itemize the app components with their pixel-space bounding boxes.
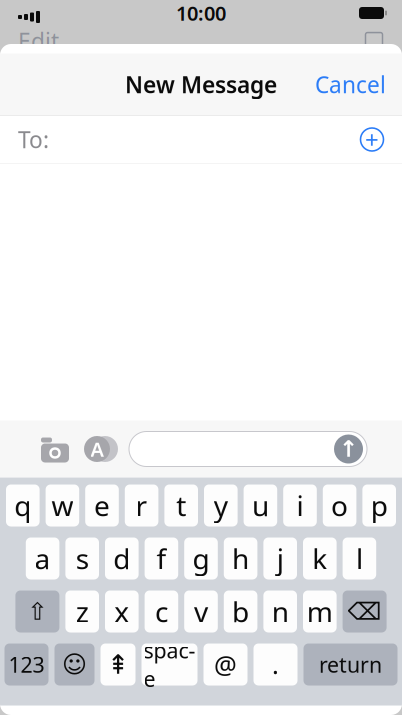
staticText: To: — [18, 124, 49, 154]
button[interactable]: h — [224, 537, 257, 579]
staticText: k — [312, 540, 327, 577]
button[interactable]: Emoji — [54, 643, 94, 685]
staticText: z — [76, 593, 89, 630]
button[interactable]: Delete — [343, 590, 387, 632]
staticText: e — [94, 487, 110, 524]
button[interactable]: Apps — [78, 426, 124, 472]
staticText: 10:00 — [176, 0, 226, 26]
button[interactable]: At sign — [203, 643, 247, 685]
button[interactable]: Return — [303, 643, 397, 685]
staticText: c — [155, 593, 168, 630]
staticText: x — [114, 593, 129, 630]
staticText: o — [331, 487, 348, 524]
staticText: Cancel — [315, 69, 386, 99]
staticText: space — [143, 636, 195, 693]
button[interactable]: Space — [141, 643, 197, 685]
button[interactable]: z — [65, 590, 99, 632]
staticText: f — [156, 540, 166, 577]
staticText: ⌫ — [348, 598, 382, 625]
staticText: q — [14, 487, 31, 524]
button[interactable]: Camera — [32, 426, 78, 472]
button[interactable]: u — [244, 484, 277, 526]
button[interactable]: w — [46, 484, 79, 526]
button[interactable]: g — [184, 537, 218, 579]
button[interactable]: t — [164, 484, 198, 526]
button[interactable]: j — [263, 537, 297, 579]
button[interactable]: Period — [253, 643, 297, 685]
button[interactable]: d — [105, 537, 139, 579]
staticText: . — [272, 648, 279, 681]
button[interactable]: Send — [332, 432, 365, 465]
staticText: b — [232, 593, 249, 630]
staticText: 123 — [8, 650, 44, 679]
button[interactable]: f — [145, 537, 178, 579]
button[interactable]: x — [105, 590, 139, 632]
staticText: w — [51, 487, 73, 524]
staticText: s — [76, 540, 89, 577]
staticText: i — [296, 487, 303, 524]
staticText: A — [90, 436, 103, 462]
staticText: a — [35, 540, 51, 577]
staticText: ⇧ — [27, 598, 47, 625]
button[interactable]: p — [362, 484, 396, 526]
button[interactable]: Numbers — [4, 643, 48, 685]
button[interactable]: v — [184, 590, 218, 632]
button[interactable]: q — [6, 484, 40, 526]
staticText: r — [136, 487, 148, 524]
button[interactable]: Cancel — [299, 57, 402, 111]
staticText: n — [272, 593, 289, 630]
staticText: @ — [214, 648, 237, 681]
button[interactable]: c — [145, 590, 178, 632]
staticText: m — [307, 593, 333, 630]
staticText: y — [214, 487, 228, 524]
staticText: v — [194, 593, 208, 630]
button[interactable]: r — [125, 484, 158, 526]
staticText: p — [371, 487, 388, 524]
button[interactable]: m — [303, 590, 337, 632]
button[interactable]: e — [85, 484, 119, 526]
button[interactable]: i — [283, 484, 317, 526]
staticText: h — [232, 540, 249, 577]
staticText: ⇞ — [107, 649, 129, 680]
button[interactable]: k — [303, 537, 337, 579]
staticText: t — [176, 487, 186, 524]
staticText: ☺ — [62, 651, 87, 678]
button[interactable]: Dictation — [100, 643, 135, 685]
staticText: g — [192, 540, 209, 577]
staticText: u — [252, 487, 269, 524]
button[interactable]: l — [343, 537, 376, 579]
button[interactable]: a — [26, 537, 59, 579]
staticText: d — [113, 540, 130, 577]
button[interactable]: b — [224, 590, 257, 632]
button[interactable]: Shift — [15, 590, 59, 632]
button[interactable]: s — [65, 537, 99, 579]
button[interactable]: n — [263, 590, 297, 632]
staticText: Edit — [18, 26, 59, 56]
staticText: l — [356, 540, 363, 577]
staticText: return — [319, 650, 382, 679]
staticText: + — [365, 124, 379, 155]
button[interactable]: y — [204, 484, 238, 526]
staticText: New Message — [125, 69, 277, 99]
button[interactable]: Add contact — [351, 118, 393, 160]
staticText: j — [277, 540, 284, 577]
button[interactable]: o — [323, 484, 356, 526]
staticText: ↑ — [339, 436, 358, 462]
